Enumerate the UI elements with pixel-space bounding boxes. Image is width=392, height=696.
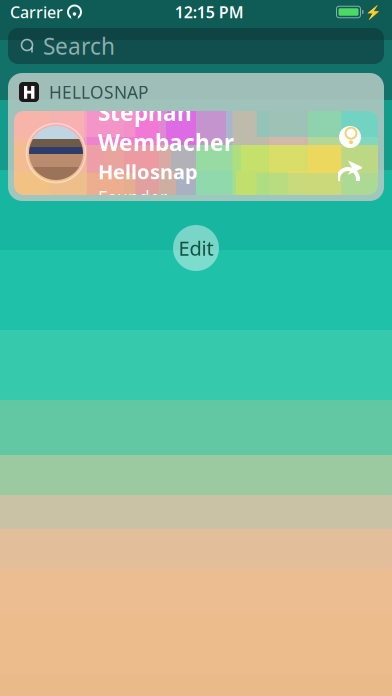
staticText: Search <box>43 31 115 61</box>
staticText: HELLOSNAP <box>49 80 148 103</box>
button[interactable]: Share <box>338 159 362 181</box>
button[interactable]: Edit <box>173 225 219 271</box>
staticText: Hellosnap <box>98 158 198 185</box>
staticText: 12:15 PM <box>175 1 244 23</box>
staticText: H <box>22 80 35 103</box>
button[interactable]: H <box>8 73 384 111</box>
staticText: ⚡ <box>365 4 382 20</box>
button[interactable]: Search <box>8 28 384 64</box>
staticText: Founder <box>98 186 167 209</box>
button[interactable]: Follow <box>338 125 362 149</box>
staticText: ➤ <box>345 154 364 180</box>
staticText: Carrier <box>10 1 63 23</box>
staticText: Edit <box>178 235 213 261</box>
staticText: Stephan Wembacher <box>98 97 234 157</box>
